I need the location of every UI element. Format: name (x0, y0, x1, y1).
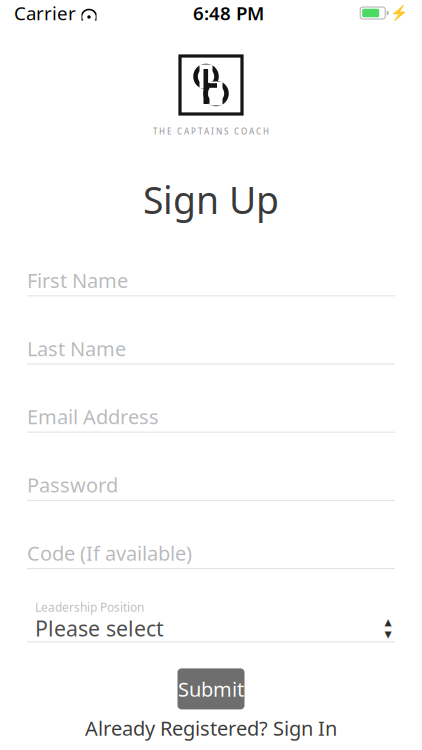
staticText: T H E C A P T A I N S C O A C H (153, 126, 269, 137)
staticText: Last Name (27, 335, 126, 362)
button[interactable]: Submit (177, 668, 244, 709)
button[interactable]: Leadership Position (27, 599, 395, 642)
staticText: Submit (178, 676, 244, 702)
staticText: Email Address (27, 403, 159, 430)
staticText: ▲ (384, 617, 391, 627)
staticText: First Name (27, 267, 128, 293)
staticText: Password (27, 471, 118, 498)
staticText: ⚡ (390, 5, 408, 21)
button[interactable]: Already Registered? Sign In (81, 714, 341, 742)
staticText: Already Registered? Sign In (85, 715, 337, 741)
staticText: Code (If available) (27, 540, 192, 566)
staticText: 6:48 PM (193, 1, 264, 25)
staticText: ▼ (384, 629, 391, 640)
staticText: Sign Up (143, 175, 279, 224)
staticText: Leadership Position (35, 599, 144, 615)
staticText: Carrier (14, 1, 76, 25)
staticText: Please select (35, 614, 164, 642)
